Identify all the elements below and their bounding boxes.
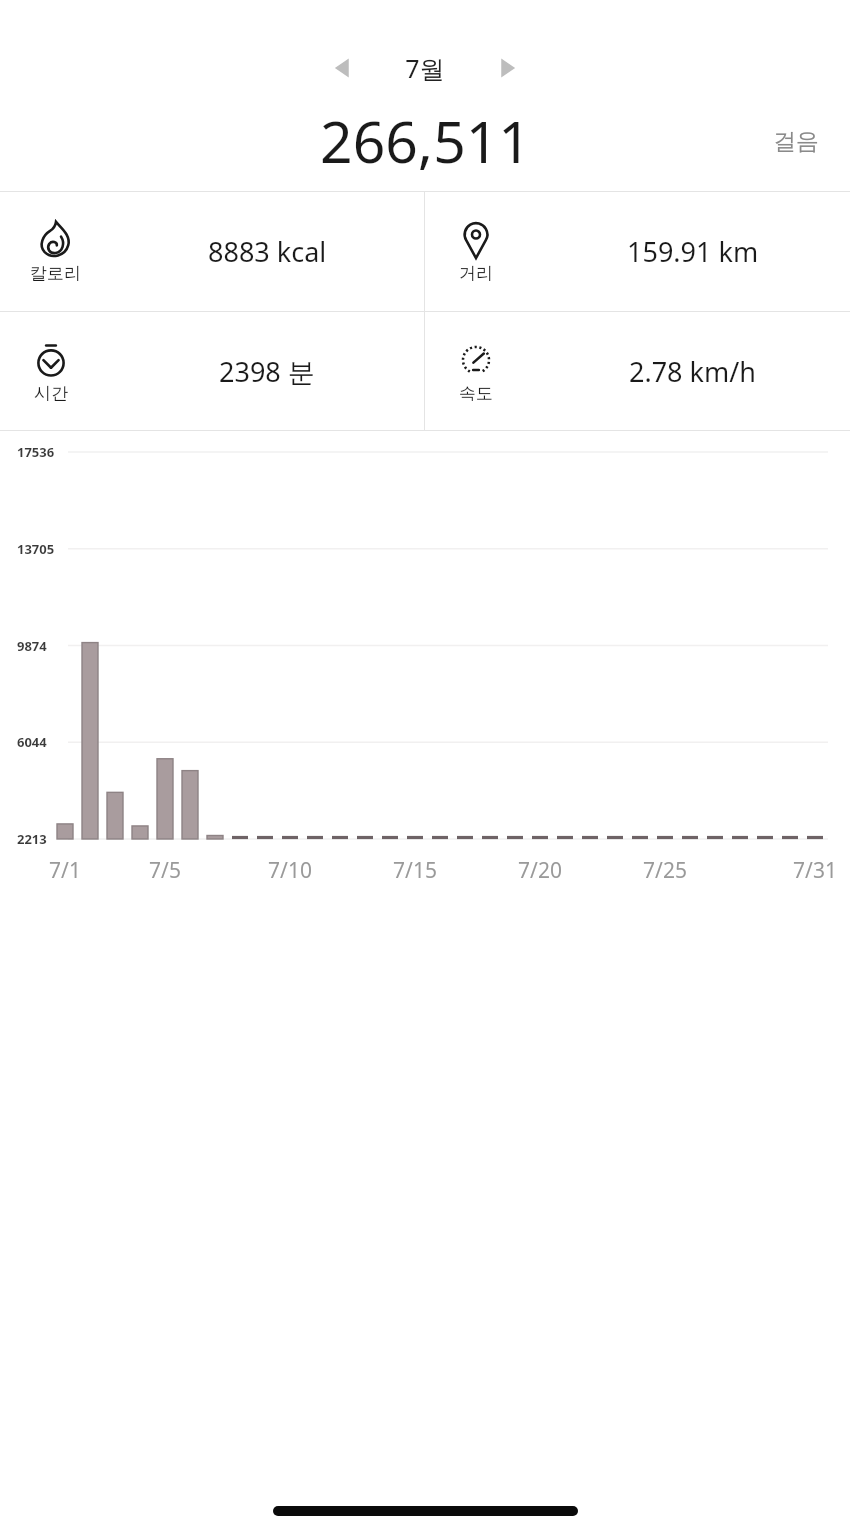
staticText: 17536 [17,443,55,461]
staticText: 2398 분 [219,353,315,390]
staticText: 7/15 [380,856,450,885]
staticText: 6044 [17,733,47,751]
staticText: 7/20 [505,856,575,885]
staticText: 2.78 km/h [629,353,756,390]
staticText: 칼로리 [30,263,81,284]
staticText: 8883 kcal [208,233,327,270]
button[interactable]: 거리 [425,192,850,311]
staticText: 13705 [17,540,55,558]
staticText: 7/5 [130,856,200,885]
button[interactable]: 칼로리 [0,192,424,311]
staticText: 7/31 [780,856,850,885]
button[interactable]: 속도 [425,312,850,430]
staticText: 9874 [17,637,47,655]
button[interactable]: 시간 [0,312,424,430]
staticText: 거리 [459,263,493,284]
staticText: 시간 [34,383,68,404]
staticText: 266,511 [320,102,531,180]
button[interactable]: Previous month [320,45,366,91]
button[interactable]: 7월 [366,51,484,85]
staticText: 7월 [405,51,445,85]
button[interactable]: Next month [484,45,530,91]
staticText: 7/10 [255,856,325,885]
staticText: 7/1 [30,856,100,885]
staticText: 2213 [17,830,47,848]
staticText: 걸음 [773,127,819,156]
staticText: 속도 [459,383,493,404]
staticText: 159.91 km [627,233,759,270]
staticText: 7/25 [630,856,700,885]
